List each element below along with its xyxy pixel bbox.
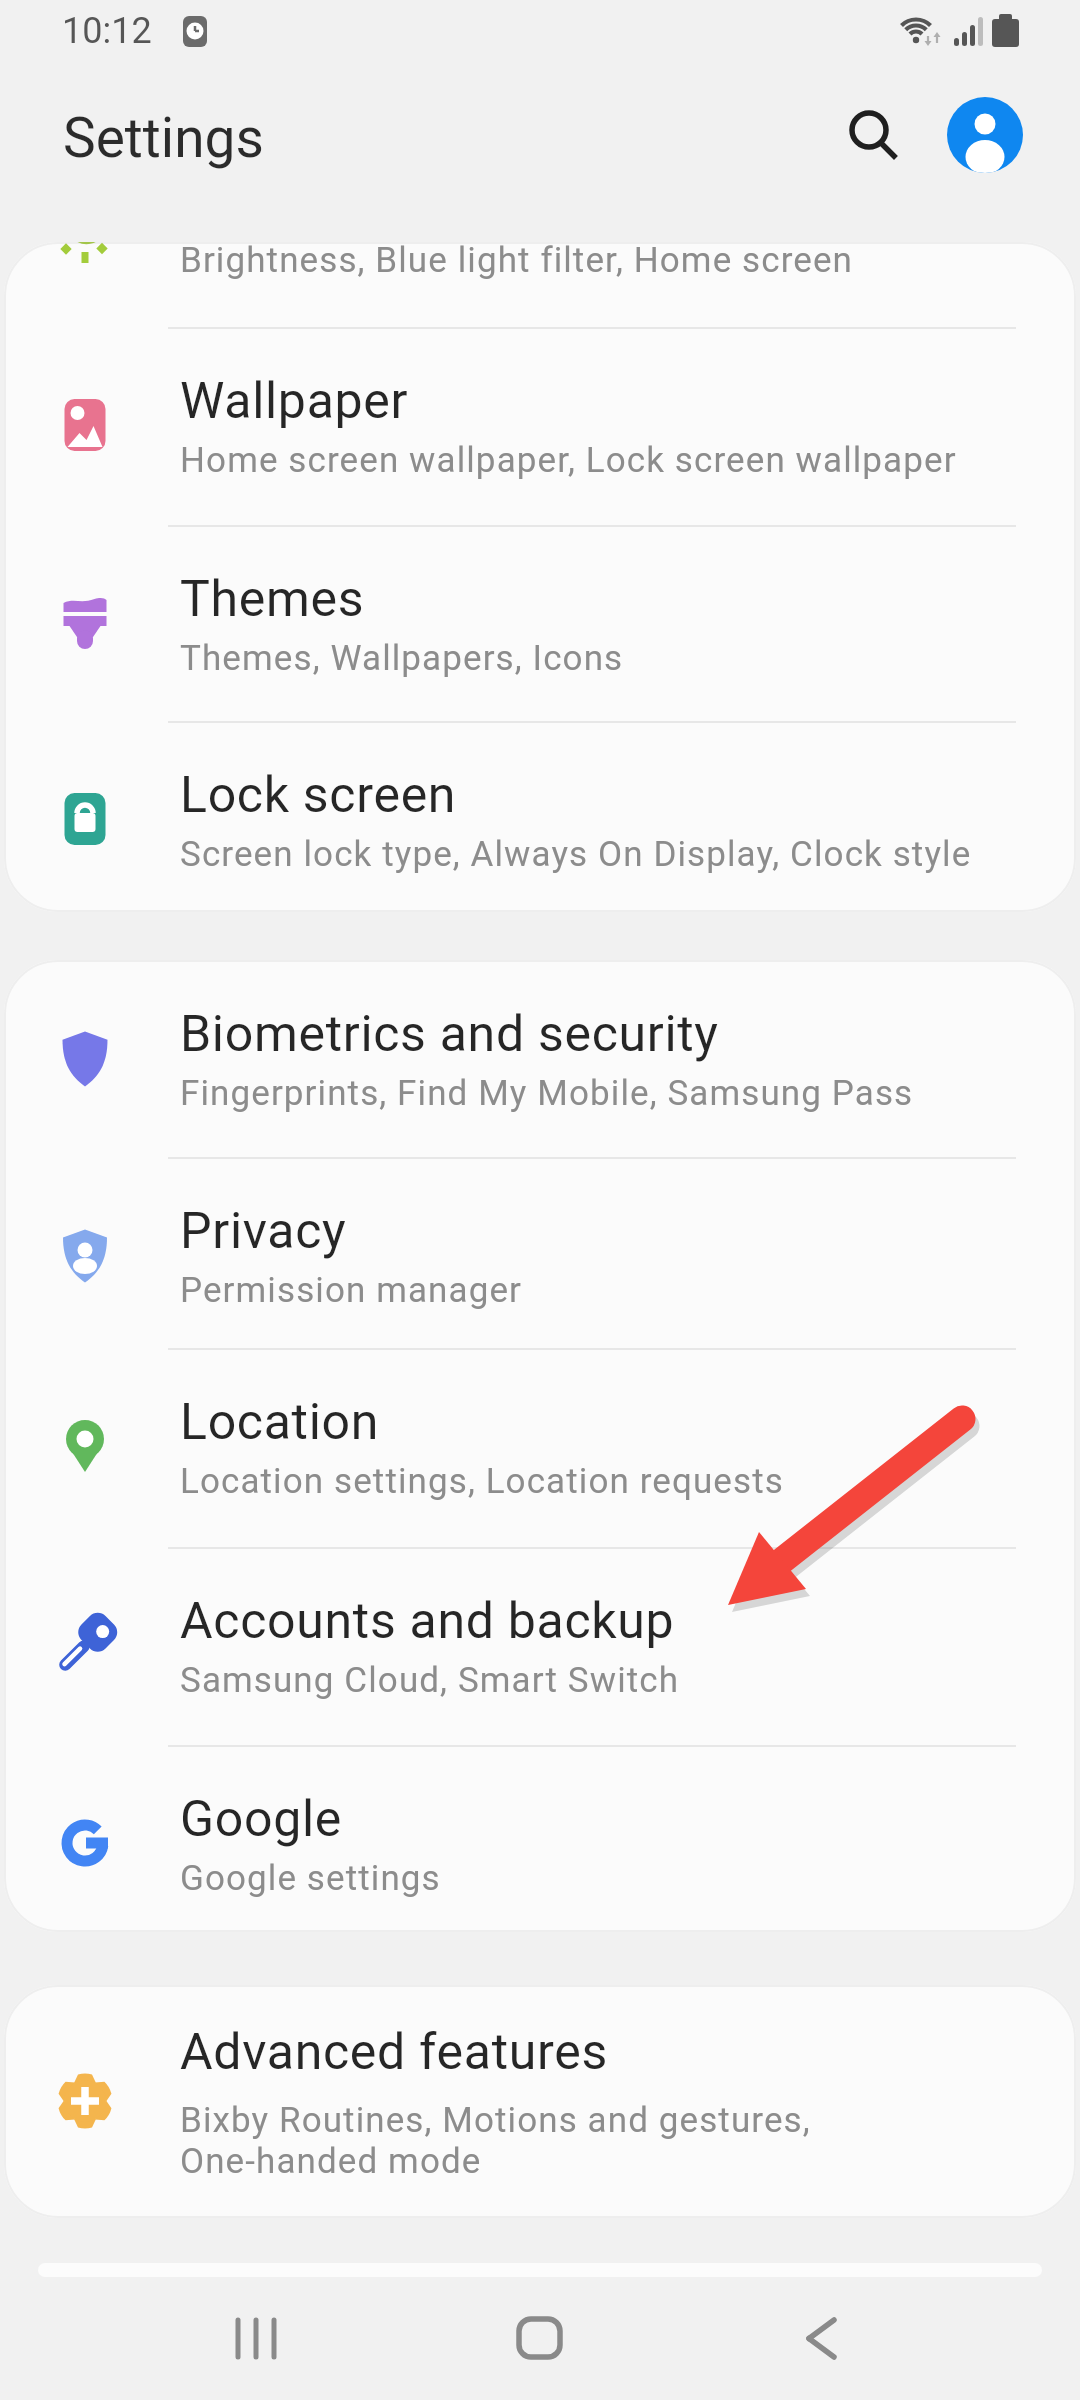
button[interactable] xyxy=(509,2308,571,2370)
button[interactable]: Google xyxy=(4,1745,1076,1932)
staticText: Google settings xyxy=(180,1858,441,1899)
staticText: Google xyxy=(180,1790,343,1849)
button[interactable] xyxy=(228,2308,288,2368)
staticText: Location xyxy=(180,1393,380,1452)
button[interactable]: Biometrics and security xyxy=(4,960,1076,1157)
button[interactable]: Brightness, Blue light filter, Home scre… xyxy=(4,242,1076,327)
staticText: 10:12 xyxy=(62,10,152,52)
staticText: Samsung Cloud, Smart Switch xyxy=(180,1660,680,1701)
button[interactable]: Lock screen xyxy=(4,721,1076,912)
staticText: Settings xyxy=(63,106,264,170)
button[interactable]: Privacy xyxy=(4,1157,1076,1348)
staticText: Bixby Routines, Motions and gestures, On… xyxy=(180,2100,811,2182)
staticText: Advanced features xyxy=(180,2023,608,2082)
staticText: Wallpaper xyxy=(180,372,409,431)
button[interactable]: Wallpaper xyxy=(4,327,1076,525)
staticText: Themes xyxy=(180,570,365,629)
button[interactable]: Accounts and backup xyxy=(4,1547,1076,1745)
staticText: Privacy xyxy=(180,1202,347,1261)
staticText: Home screen wallpaper, Lock screen wallp… xyxy=(180,440,957,481)
staticText: Brightness, Blue light filter, Home scre… xyxy=(180,242,854,281)
staticText: Lock screen xyxy=(180,766,457,825)
button[interactable]: Advanced features xyxy=(4,1985,1076,2218)
button[interactable]: Themes xyxy=(4,525,1076,721)
staticText: Screen lock type, Always On Display, Clo… xyxy=(180,834,972,875)
button[interactable]: Location xyxy=(4,1348,1076,1547)
staticText: Themes, Wallpapers, Icons xyxy=(180,638,624,679)
button[interactable] xyxy=(795,2308,855,2368)
staticText: Accounts and backup xyxy=(180,1592,675,1651)
staticText: Location settings, Location requests xyxy=(180,1461,784,1502)
button[interactable] xyxy=(836,99,904,167)
button[interactable] xyxy=(947,97,1023,173)
staticText: Fingerprints, Find My Mobile, Samsung Pa… xyxy=(180,1073,914,1114)
staticText: Biometrics and security xyxy=(180,1005,719,1064)
staticText: Permission manager xyxy=(180,1270,523,1311)
